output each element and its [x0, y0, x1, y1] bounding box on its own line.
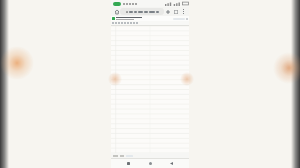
button[interactable]: Home	[113, 8, 120, 15]
button[interactable]: Recents	[125, 160, 132, 167]
button[interactable]: Back	[168, 160, 175, 167]
button[interactable]: New tab	[164, 8, 172, 16]
button[interactable]: Tabs	[172, 8, 180, 16]
button[interactable]	[120, 8, 164, 15]
button[interactable]: More options	[180, 8, 187, 15]
button[interactable]: Home	[147, 160, 154, 167]
